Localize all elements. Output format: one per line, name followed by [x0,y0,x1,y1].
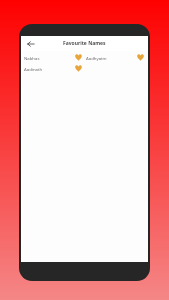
staticText: Aadhyatm [86,55,137,61]
staticText: Nabhas [24,55,75,61]
staticText: Favourite Names [63,40,106,47]
button[interactable]: Back [25,38,36,49]
button[interactable]: Nabhas [24,52,86,63]
button[interactable]: Aadinath [24,63,86,74]
button[interactable]: Aadhyatm [86,52,148,63]
staticText: Aadinath [24,66,75,72]
